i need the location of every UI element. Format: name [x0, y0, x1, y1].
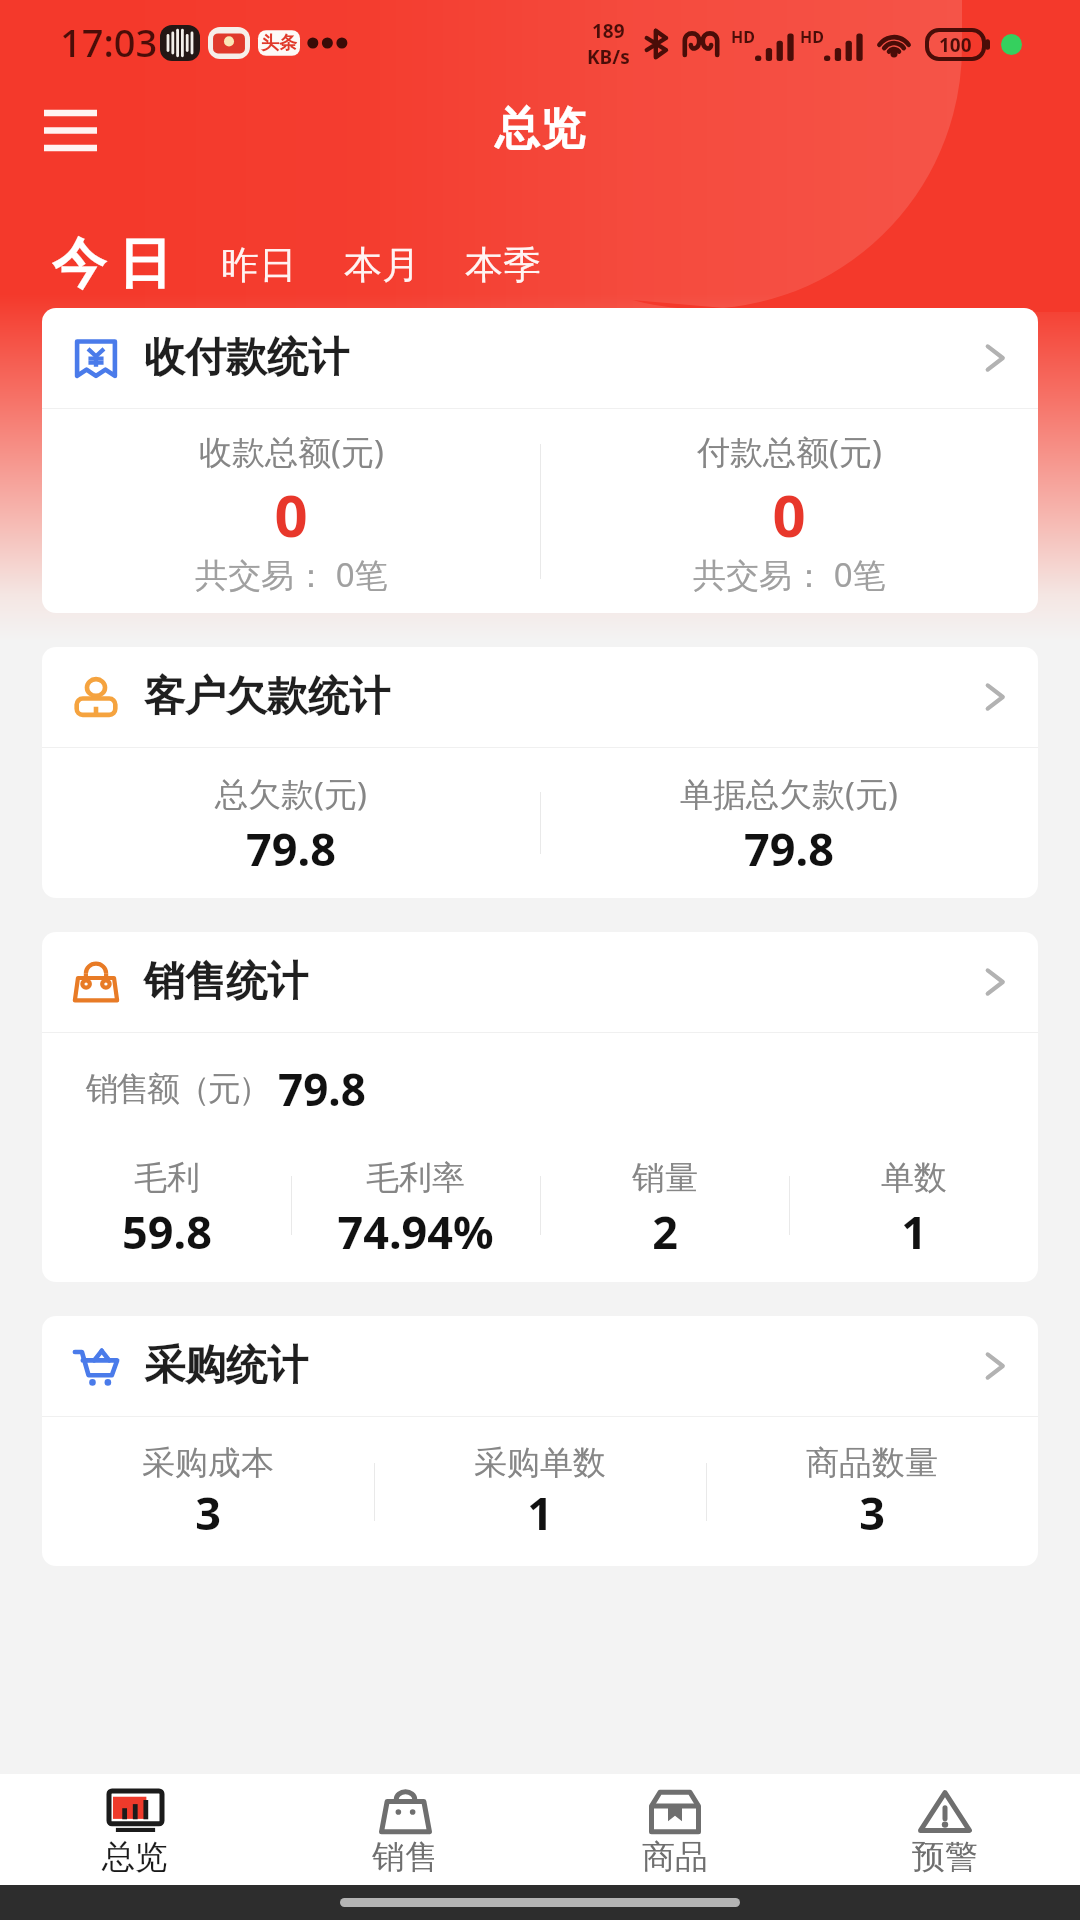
button[interactable]: 商品	[540, 1774, 810, 1885]
staticText: 商品	[642, 1836, 708, 1878]
staticText: 59.8	[122, 1201, 212, 1262]
staticText: 0	[772, 475, 806, 554]
staticText: 共交易： 0笔	[693, 552, 886, 597]
staticText: 3	[859, 1482, 885, 1543]
button[interactable]: Menu	[14, 88, 126, 172]
staticText: KB/s	[587, 44, 630, 70]
staticText: 今日	[46, 230, 178, 298]
button[interactable]: 客户欠款统计	[42, 647, 1038, 747]
staticText: 销售统计	[144, 956, 308, 1008]
staticText: 共交易： 0笔	[195, 552, 388, 597]
staticText: 预警	[912, 1836, 978, 1878]
button[interactable]: 销售	[270, 1774, 540, 1885]
staticText: 销量	[632, 1157, 698, 1199]
staticText: 销售额（元）	[87, 1068, 270, 1110]
staticText: 3	[195, 1482, 221, 1543]
staticText: HD	[731, 26, 755, 48]
staticText: 毛利	[134, 1157, 200, 1199]
staticText: 189	[592, 18, 625, 44]
staticText: 采购单数	[474, 1442, 606, 1484]
staticText: 单据总欠款(元)	[680, 771, 898, 816]
staticText: 1	[901, 1201, 927, 1262]
staticText: 0	[274, 475, 308, 554]
button[interactable]: 销售统计	[42, 932, 1038, 1032]
staticText: 单数	[881, 1157, 947, 1199]
staticText: 100	[939, 32, 972, 58]
staticText: 头条	[261, 32, 297, 55]
staticText: 本季	[465, 241, 541, 289]
staticText: 毛利率	[366, 1157, 465, 1199]
staticText: 总览	[102, 1836, 168, 1878]
staticText: 总欠款(元)	[215, 771, 367, 816]
staticText: 17:03	[60, 16, 158, 68]
staticText: 74.94%	[337, 1201, 494, 1262]
staticText: 付款总额(元)	[697, 429, 882, 474]
button[interactable]: 今日	[34, 224, 190, 304]
staticText: 商品数量	[806, 1442, 938, 1484]
staticText: 2	[652, 1201, 678, 1262]
staticText: 采购统计	[144, 1340, 308, 1392]
button[interactable]: 本月	[332, 235, 432, 295]
staticText: 销售	[372, 1836, 438, 1878]
staticText: 收款总额(元)	[199, 429, 384, 474]
button[interactable]: 本季	[453, 235, 553, 295]
staticText: 采购成本	[142, 1442, 274, 1484]
staticText: HD	[800, 26, 824, 48]
staticText: 昨日	[221, 241, 297, 289]
button[interactable]: 昨日	[209, 235, 309, 295]
staticText: 本月	[344, 241, 420, 289]
staticText: 收付款统计	[144, 332, 349, 384]
button[interactable]: 总览	[0, 1774, 270, 1885]
button[interactable]: 采购统计	[42, 1316, 1038, 1416]
staticText: 1	[527, 1482, 553, 1543]
button[interactable]: 预警	[810, 1774, 1080, 1885]
button[interactable]: 收付款统计	[42, 308, 1038, 408]
staticText: 客户欠款统计	[144, 671, 390, 723]
staticText: 79.8	[246, 818, 336, 879]
staticText: 总览	[495, 101, 585, 158]
staticText: 79.8	[744, 818, 834, 879]
staticText: 79.8	[278, 1059, 366, 1119]
